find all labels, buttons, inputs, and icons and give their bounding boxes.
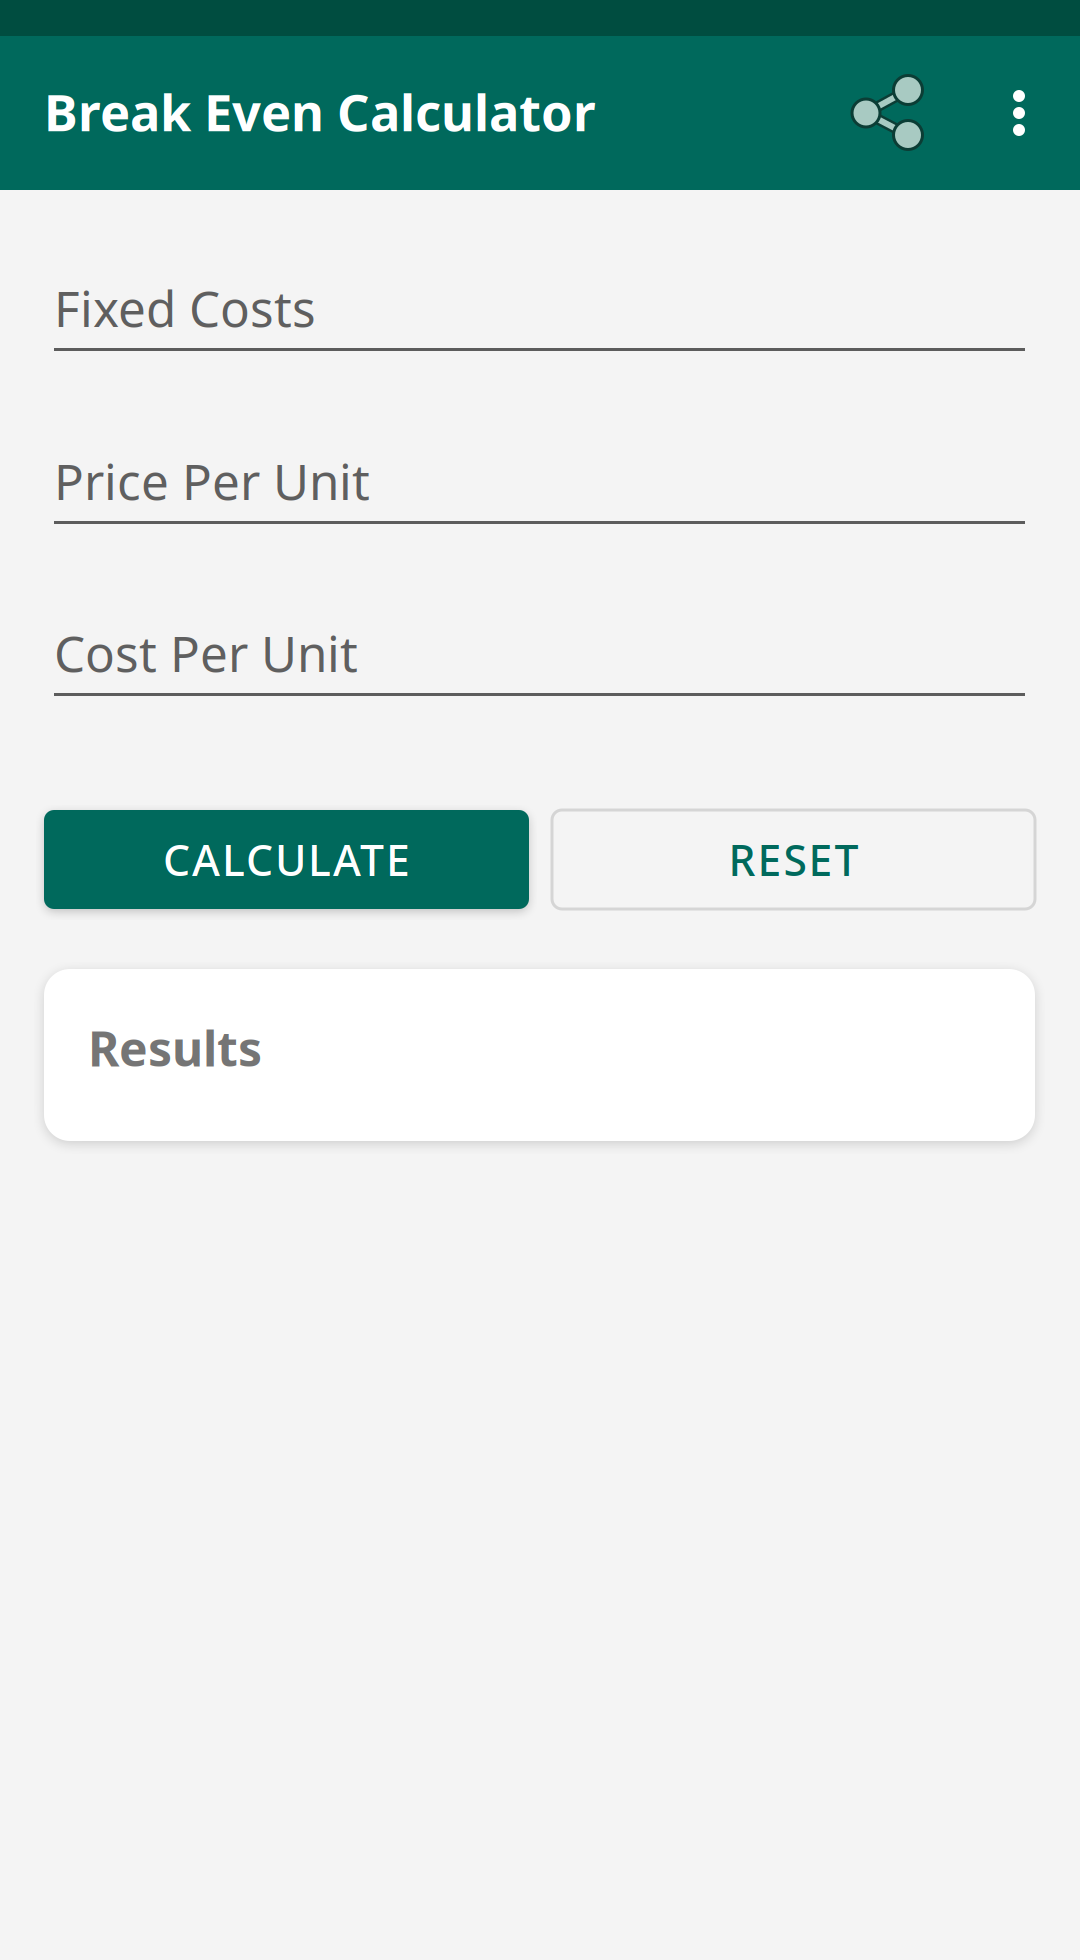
staticText: Fixed Costs	[54, 275, 316, 340]
button[interactable]: More options	[967, 48, 1071, 178]
staticText: Cost Per Unit	[54, 620, 358, 685]
button[interactable]: Share	[823, 48, 953, 178]
button[interactable]: CALCULATE	[44, 810, 529, 909]
staticText: Results	[88, 1016, 262, 1080]
staticText: Price Per Unit	[54, 448, 370, 513]
staticText: Break Even Calculator	[44, 78, 596, 145]
button[interactable]: RESET	[552, 810, 1035, 909]
staticText: RESET	[728, 831, 858, 888]
staticText: CALCULATE	[163, 831, 410, 888]
